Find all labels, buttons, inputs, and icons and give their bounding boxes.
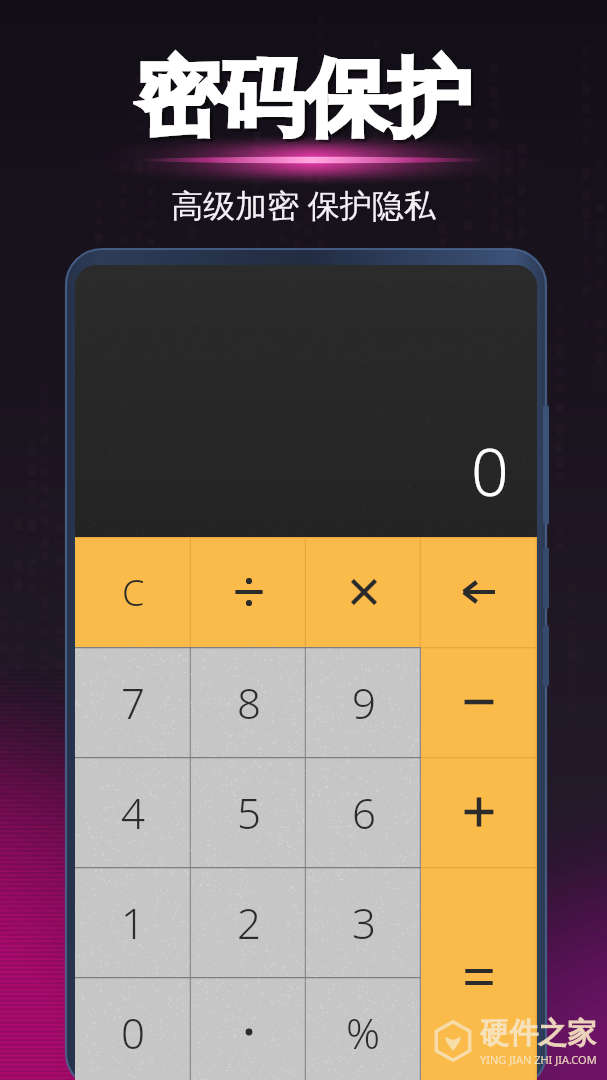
staticText: YING JIAN ZHI JIA.COM bbox=[480, 1052, 597, 1067]
staticText: 0 bbox=[471, 425, 509, 515]
button[interactable]: Equals bbox=[421, 867, 537, 1080]
button[interactable]: 1 bbox=[75, 867, 191, 977]
staticText: % bbox=[346, 1004, 381, 1061]
button[interactable] bbox=[306, 537, 421, 647]
staticText: 0 bbox=[121, 1004, 145, 1061]
staticText: 硬件之家 bbox=[480, 1015, 596, 1052]
staticText: 密码保护 bbox=[139, 49, 475, 155]
button[interactable]: 7 bbox=[75, 647, 191, 757]
button[interactable]: 5 bbox=[191, 757, 306, 867]
button[interactable]: Minus bbox=[421, 647, 537, 757]
staticText: 2 bbox=[237, 894, 261, 951]
staticText: 8 bbox=[237, 674, 261, 731]
staticText: 密码保护 bbox=[136, 46, 472, 152]
button[interactable]: % bbox=[306, 977, 421, 1080]
staticText: C bbox=[122, 568, 145, 617]
staticText: 高级加密 保护隐私 bbox=[171, 183, 436, 227]
button[interactable]: Backspace bbox=[421, 537, 537, 647]
staticText: 5 bbox=[237, 784, 261, 841]
staticText: 3 bbox=[352, 894, 376, 951]
button[interactable]: 2 bbox=[191, 867, 306, 977]
button[interactable]: 0 bbox=[75, 977, 191, 1080]
button[interactable]: 6 bbox=[306, 757, 421, 867]
button[interactable]: 9 bbox=[306, 647, 421, 757]
staticText: 9 bbox=[352, 674, 376, 731]
button[interactable]: C bbox=[75, 537, 191, 647]
button[interactable] bbox=[191, 537, 306, 647]
button[interactable]: 8 bbox=[191, 647, 306, 757]
staticText: 6 bbox=[352, 784, 376, 841]
staticText: 1 bbox=[121, 894, 145, 951]
staticText: 4 bbox=[121, 784, 145, 841]
button[interactable]: Plus bbox=[421, 757, 537, 867]
button[interactable]: 3 bbox=[306, 867, 421, 977]
button[interactable]: 4 bbox=[75, 757, 191, 867]
staticText: 7 bbox=[121, 674, 145, 731]
button[interactable] bbox=[191, 977, 306, 1080]
